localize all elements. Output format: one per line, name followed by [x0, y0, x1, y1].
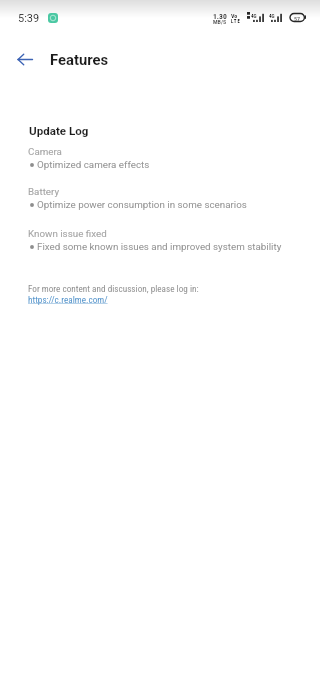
staticText: 4G	[251, 13, 257, 19]
button[interactable]: https://c.realme.com/	[28, 294, 108, 305]
staticText: 4G	[269, 13, 275, 19]
staticText: Optimize power consumption in some scena…	[37, 199, 247, 210]
staticText: 5:39	[18, 12, 40, 25]
staticText: 57	[294, 15, 301, 22]
staticText: Optimized camera effects	[37, 159, 150, 170]
staticText: LTE	[231, 18, 241, 24]
staticText: Update Log	[29, 124, 89, 138]
staticText: 1.30	[213, 12, 227, 21]
staticText: Vo	[231, 12, 238, 19]
staticText: Features	[50, 51, 109, 68]
staticText: For more content and discussion, please …	[28, 283, 199, 294]
button[interactable]: Back	[2, 37, 47, 82]
staticText: Camera	[28, 146, 62, 157]
staticText: MB/S	[213, 18, 227, 25]
staticText: Fixed some known issues and improved sys…	[37, 241, 282, 252]
staticText: Battery	[28, 186, 60, 197]
staticText: Known issue fixed	[28, 228, 107, 239]
